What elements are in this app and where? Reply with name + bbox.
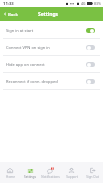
staticText: 1: [52, 167, 54, 170]
staticText: Connect VPN on sign in: [6, 45, 86, 50]
button[interactable]: Support: [61, 162, 82, 183]
staticText: Hide app on connect: [6, 62, 86, 67]
staticText: 11:33: [3, 1, 14, 7]
staticText: Notifications: [41, 175, 60, 179]
staticText: Sign in at start: [6, 28, 86, 33]
staticText: Settings: [24, 175, 36, 179]
button[interactable]: Connect VPN on sign in: [0, 39, 103, 56]
button[interactable]: Reconnect if conn. dropped: [0, 73, 103, 90]
button[interactable]: Sign in at start: [0, 22, 103, 39]
button[interactable]: Notifications: [40, 162, 61, 183]
staticText: Home: [6, 175, 15, 179]
staticText: Sign Out: [86, 175, 99, 179]
button[interactable]: Settings: [20, 162, 40, 183]
staticText: Reconnect if conn. dropped: [6, 79, 86, 84]
staticText: 83%: [94, 1, 102, 6]
button[interactable]: Back: [0, 7, 103, 21]
button[interactable]: Sign Out: [82, 162, 103, 183]
staticText: Support: [66, 175, 78, 179]
staticText: Back: [8, 11, 18, 17]
staticText: Settings: [38, 11, 59, 18]
button[interactable]: Hide app on connect: [0, 56, 103, 73]
button[interactable]: Home: [0, 162, 20, 183]
staticText: 4G: [81, 1, 86, 6]
